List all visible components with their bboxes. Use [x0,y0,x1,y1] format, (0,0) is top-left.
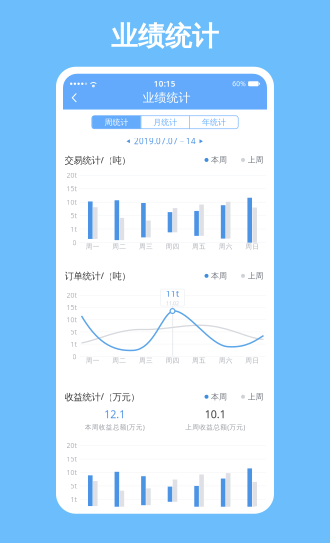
staticText: 5t [70,211,76,220]
staticText: 上周 [247,155,263,165]
staticText: 周一 [86,356,100,365]
staticText: 0 [72,238,76,247]
staticText: 0 [72,352,76,361]
staticText: 20t [66,441,76,450]
staticText: 业绩统计 [142,90,190,105]
staticText: 1t [70,225,76,234]
staticText: 本周 [211,271,227,281]
staticText: 20t [66,291,76,299]
staticText: 周四 [165,356,179,365]
staticText: 5t [70,327,76,336]
staticText: 周统计 [104,117,128,127]
staticText: 本周 [211,392,227,402]
staticText: 11.02 [166,300,179,307]
staticText: 年统计 [202,117,226,127]
staticText: 周五 [192,243,206,251]
staticText: 10t [66,468,76,477]
staticText: 12.1 [104,407,125,421]
staticText: 20t [66,171,76,180]
staticText: 1t [70,340,76,349]
staticText: 周二 [112,243,126,251]
staticText: 15t [66,303,76,312]
staticText: 10:15 [154,78,176,89]
button[interactable]: 周统计 [92,116,141,129]
staticText: 订单统计/（吨） [64,270,130,282]
staticText: 交易统计/（吨） [64,154,130,166]
staticText: 10.1 [205,407,226,421]
staticText: 10t [66,198,76,207]
staticText: 本周 [211,155,227,165]
staticText: 本周收益总额(万元) [85,423,145,431]
staticText: 5t [70,481,76,490]
staticText: 上周收益总额(万元) [185,423,245,431]
staticText: 10t [66,315,76,324]
staticText: 业绩统计 [111,20,219,53]
staticText: 上周 [247,392,263,402]
staticText: 0 [72,508,76,517]
staticText: 月统计 [153,117,177,127]
staticText: 15t [66,184,76,193]
staticText: 周三 [139,243,153,251]
staticText: 周六 [219,243,233,251]
staticText: 2019.07.07－14 [134,136,196,147]
staticText: 周日 [245,356,259,365]
staticText: 周三 [139,356,153,365]
staticText: 周二 [112,356,126,365]
staticText: 周五 [192,356,206,365]
staticText: 11t [166,288,179,299]
button[interactable]: 返回 [66,90,82,106]
staticText: 60% [232,79,246,88]
button[interactable]: 年统计 [190,116,238,129]
staticText: 周四 [165,243,179,251]
staticText: 收益统计/（万元） [64,390,139,403]
staticText: 周六 [219,356,233,365]
staticText: 1t [70,495,76,504]
button[interactable]: 月统计 [141,116,189,129]
staticText: 上周 [247,271,263,281]
staticText: 周日 [245,243,259,251]
staticText: 15t [66,454,76,463]
staticText: 周一 [86,243,100,251]
